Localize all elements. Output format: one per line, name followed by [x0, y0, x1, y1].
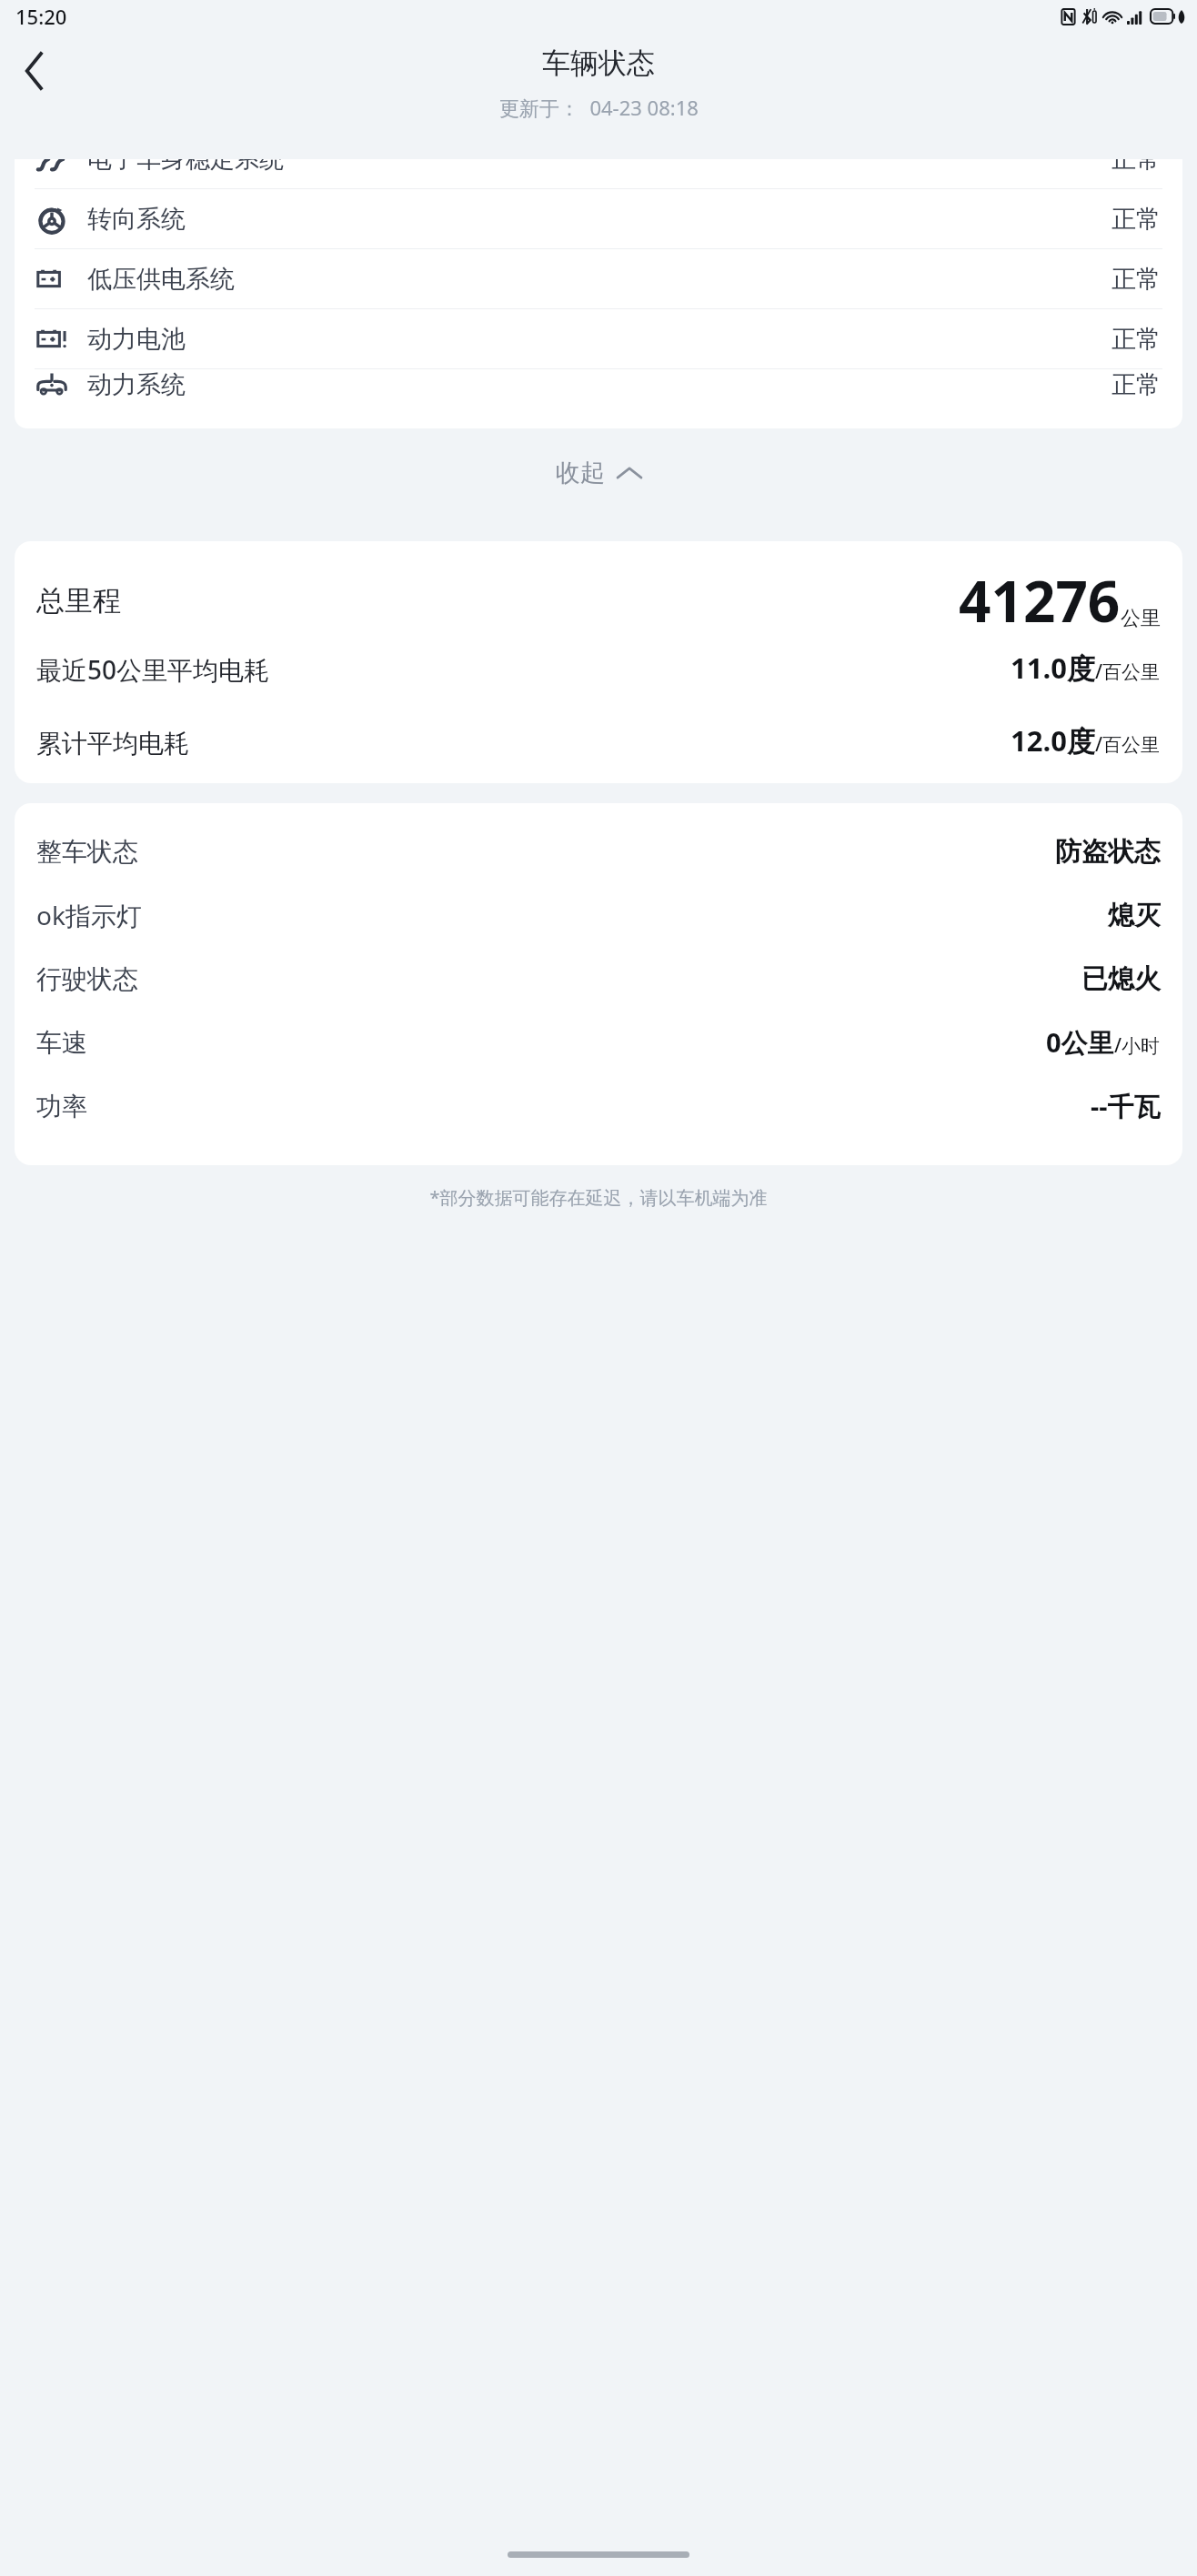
- staticText: 公里: [1121, 606, 1161, 631]
- staticText: 动力系统: [87, 369, 186, 398]
- staticText: 整车状态: [36, 836, 138, 868]
- staticText: /小时: [1114, 1032, 1161, 1059]
- staticText: 累计平均电耗: [36, 728, 189, 760]
- button[interactable]: 车速: [36, 1011, 1161, 1074]
- staticText: --千瓦: [1091, 1088, 1161, 1124]
- staticText: 12.0度: [1011, 721, 1095, 760]
- staticText: /百公里: [1095, 731, 1161, 758]
- staticText: ok指示灯: [36, 898, 142, 932]
- button[interactable]: 行驶状态: [36, 947, 1161, 1011]
- staticText: 防盗状态: [1055, 835, 1161, 869]
- button[interactable]: Back: [5, 42, 64, 100]
- staticText: 已熄火: [1081, 962, 1161, 996]
- staticText: 15:20: [15, 3, 67, 30]
- staticText: *部分数据可能存在延迟，请以车机端为准: [0, 1185, 1197, 1210]
- staticText: 行驶状态: [36, 963, 138, 995]
- staticText: 熄灭: [1108, 899, 1161, 932]
- button[interactable]: ok指示灯: [36, 883, 1161, 947]
- staticText: 转向系统: [87, 204, 186, 235]
- staticText: 车辆状态: [542, 45, 655, 81]
- staticText: 正常: [1111, 324, 1161, 355]
- staticText: 总里程: [36, 583, 121, 619]
- staticText: 正常: [1111, 264, 1161, 295]
- button[interactable]: 动力电池: [15, 309, 1182, 368]
- staticText: 11.0度: [1011, 649, 1095, 687]
- staticText: 收起: [556, 458, 605, 488]
- button[interactable]: 整车状态: [36, 820, 1161, 883]
- staticText: 电子车身稳定系统: [87, 159, 284, 175]
- staticText: /百公里: [1095, 659, 1161, 685]
- button[interactable]: 低压供电系统: [15, 249, 1182, 308]
- staticText: 0公里: [1046, 1024, 1114, 1061]
- staticText: 车速: [36, 1027, 87, 1059]
- staticText: 正常: [1111, 159, 1161, 175]
- staticText: 更新于： 04-23 08:18: [499, 94, 699, 121]
- staticText: 正常: [1111, 369, 1161, 398]
- staticText: 功率: [36, 1091, 87, 1122]
- button[interactable]: 收起: [0, 428, 1197, 518]
- staticText: 动力电池: [87, 324, 186, 355]
- button[interactable]: 转向系统: [15, 189, 1182, 248]
- staticText: 41276: [959, 562, 1121, 639]
- staticText: 最近50公里平均电耗: [36, 652, 270, 687]
- button[interactable]: 动力系统: [15, 369, 1182, 398]
- button[interactable]: 功率: [36, 1074, 1161, 1138]
- staticText: 正常: [1111, 204, 1161, 235]
- button[interactable]: 电子车身稳定系统: [15, 159, 1182, 188]
- staticText: 低压供电系统: [87, 264, 235, 295]
